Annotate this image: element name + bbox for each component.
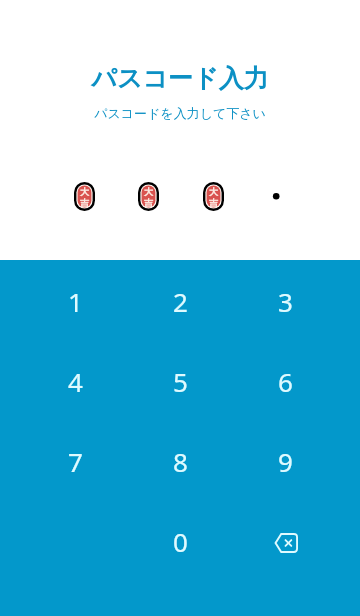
button[interactable]: 9 <box>233 422 337 500</box>
button[interactable]: 4 <box>23 342 127 420</box>
staticText: 吉 <box>209 197 218 208</box>
button[interactable]: 5 <box>128 342 232 420</box>
staticText: 4 <box>68 364 83 399</box>
staticText: 吉 <box>144 197 153 208</box>
staticText: 吉 <box>80 197 89 208</box>
staticText: パスコード入力 <box>0 63 360 94</box>
staticText: パスコードを入力して下さい <box>0 105 360 121</box>
staticText: 9 <box>278 444 293 479</box>
button[interactable]: Delete <box>233 502 337 580</box>
staticText: 6 <box>278 364 293 399</box>
staticText: 大 <box>80 186 89 197</box>
staticText: 8 <box>173 444 188 479</box>
button[interactable]: 3 <box>233 262 337 340</box>
button[interactable]: 7 <box>23 422 127 500</box>
button[interactable]: 0 <box>128 502 232 580</box>
button[interactable]: 2 <box>128 262 232 340</box>
button[interactable]: 8 <box>128 422 232 500</box>
staticText: 0 <box>173 524 188 559</box>
staticText: 大 <box>144 186 153 197</box>
staticText: 2 <box>173 284 188 319</box>
staticText: 7 <box>68 444 83 479</box>
button[interactable]: 6 <box>233 342 337 420</box>
staticText: 大 <box>209 186 218 197</box>
staticText: 5 <box>173 364 188 399</box>
staticText: 1 <box>68 284 83 319</box>
button[interactable]: 1 <box>23 262 127 340</box>
staticText: 3 <box>278 284 293 319</box>
